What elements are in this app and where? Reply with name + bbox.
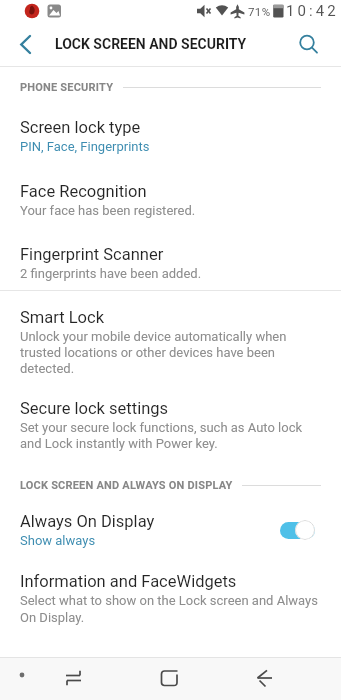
button[interactable]: Smart Lock <box>0 307 341 376</box>
staticText: Screen lock type <box>20 118 141 137</box>
button[interactable]: Screen lock type <box>0 117 341 155</box>
staticText: Fingerprint Scanner <box>20 245 164 264</box>
staticText: Information and FaceWidgets <box>20 572 237 591</box>
staticText: PHONE SECURITY <box>20 81 114 94</box>
button[interactable] <box>280 520 315 540</box>
button[interactable]: Always On Display <box>0 511 341 549</box>
staticText: On Display. <box>20 610 85 625</box>
staticText: Secure lock settings <box>20 399 169 418</box>
staticText: 2 fingerprints have been added. <box>20 266 202 281</box>
staticText: LOCK SCREEN AND SECURITY <box>55 36 247 52</box>
button[interactable]: Face Recognition <box>0 181 341 219</box>
button[interactable] <box>54 657 94 700</box>
staticText: and Lock instantly with Power key. <box>20 436 218 451</box>
button[interactable] <box>244 657 284 700</box>
staticText: 10:42 <box>286 2 339 20</box>
button[interactable] <box>12 665 32 685</box>
button[interactable]: Information and FaceWidgets <box>0 571 341 626</box>
staticText: trusted locations or other devices have … <box>20 345 275 360</box>
staticText: PIN, Face, Fingerprints <box>20 139 150 154</box>
button[interactable] <box>293 22 335 66</box>
staticText: Show always <box>20 533 96 548</box>
button[interactable] <box>149 657 189 700</box>
button[interactable] <box>6 22 44 66</box>
button[interactable]: Secure lock settings <box>0 398 341 451</box>
staticText: Always On Display <box>20 512 155 531</box>
staticText: detected. <box>20 361 75 376</box>
staticText: Face Recognition <box>20 182 147 201</box>
staticText: Your face has been registered. <box>20 203 196 218</box>
staticText: 71% <box>248 5 271 18</box>
staticText: Set your secure lock functions, such as … <box>20 420 303 435</box>
staticText: LOCK SCREEN AND ALWAYS ON DISPLAY <box>20 479 233 492</box>
staticText: Smart Lock <box>20 308 105 327</box>
staticText: Select what to show on the Lock screen a… <box>20 593 318 608</box>
button[interactable]: Fingerprint Scanner <box>0 244 341 282</box>
staticText: Unlock your mobile device automatically … <box>20 329 287 344</box>
